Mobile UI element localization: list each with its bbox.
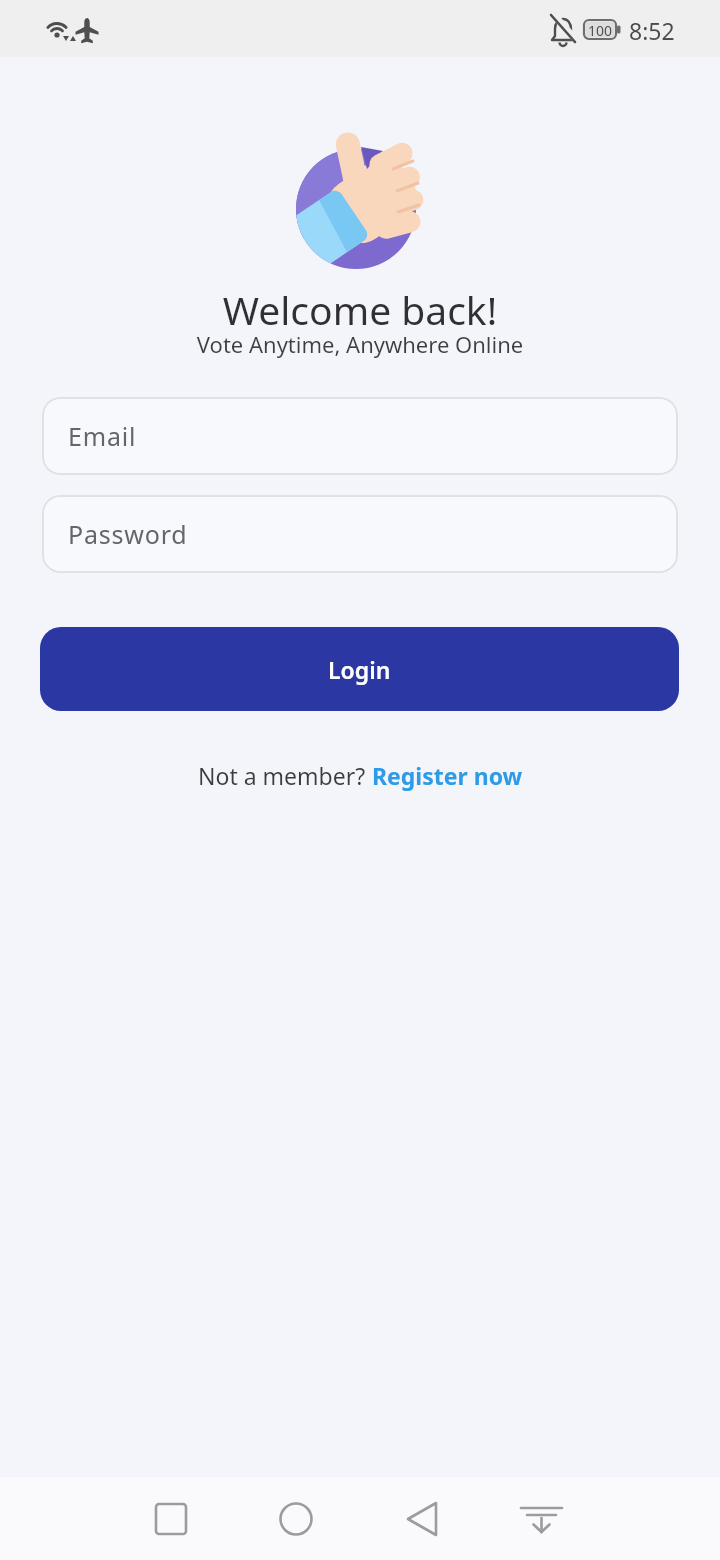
staticText: 8:52 (629, 15, 675, 46)
button[interactable] (143, 1491, 199, 1547)
button[interactable]: Register now (372, 760, 523, 791)
button[interactable] (396, 1491, 452, 1547)
staticText: Welcome back! (0, 283, 720, 336)
staticText: Email (68, 419, 137, 453)
button[interactable]: Password (42, 495, 678, 573)
staticText: Vote Anytime, Anywhere Online (0, 329, 720, 359)
button[interactable]: Login (40, 627, 679, 711)
staticText: 100 (588, 21, 613, 40)
button[interactable]: Email (42, 397, 678, 475)
staticText: Password (68, 517, 188, 551)
staticText: Login (328, 654, 391, 685)
staticText: Not a member? (198, 760, 372, 791)
button[interactable] (513, 1491, 569, 1547)
button[interactable] (268, 1491, 324, 1547)
